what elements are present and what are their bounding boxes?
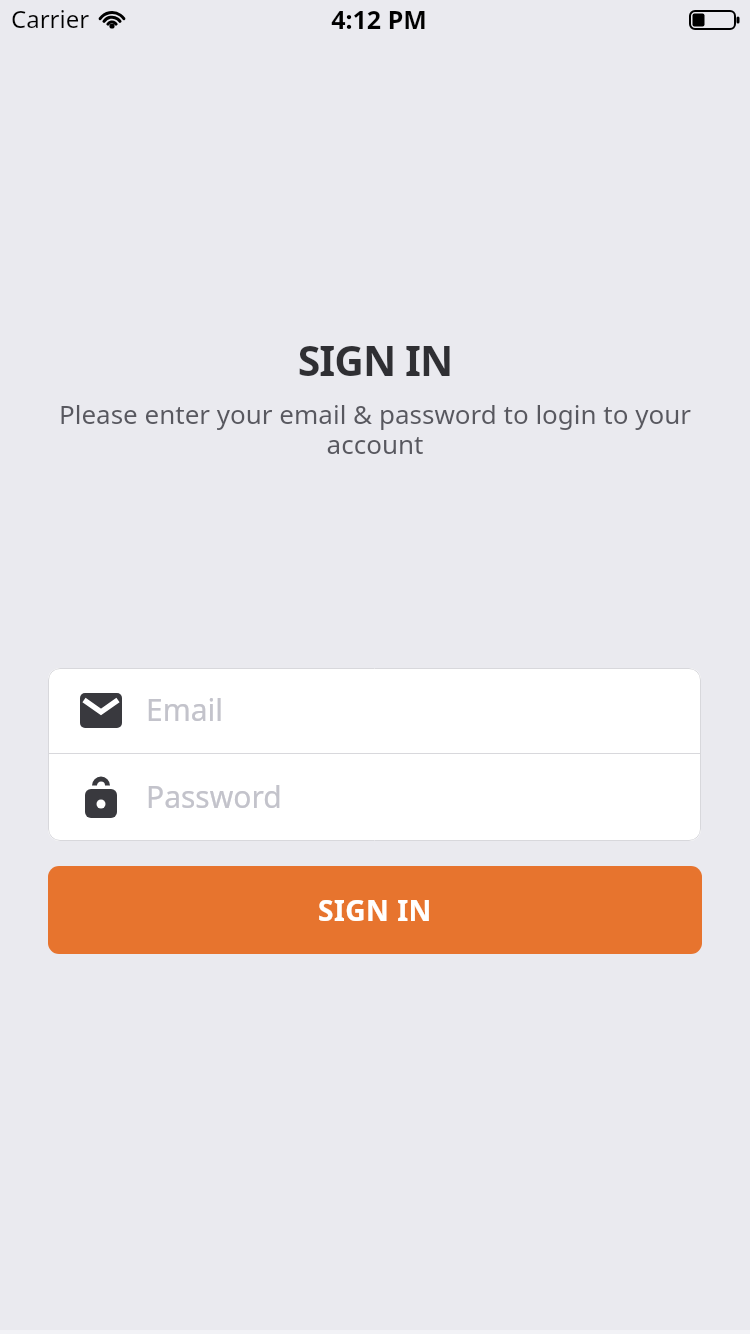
staticText: Carrier <box>11 2 90 35</box>
staticText: SIGN IN <box>0 332 750 388</box>
staticText: 4:12 PM <box>4 2 750 36</box>
staticText: Password <box>146 776 282 817</box>
button[interactable]: Password <box>48 754 701 840</box>
button[interactable]: Email <box>48 668 701 753</box>
staticText: SIGN IN <box>318 891 432 929</box>
button[interactable]: SIGN IN <box>48 866 702 954</box>
staticText: Email <box>146 689 224 730</box>
staticText: Please enter your email & password to lo… <box>0 396 750 462</box>
